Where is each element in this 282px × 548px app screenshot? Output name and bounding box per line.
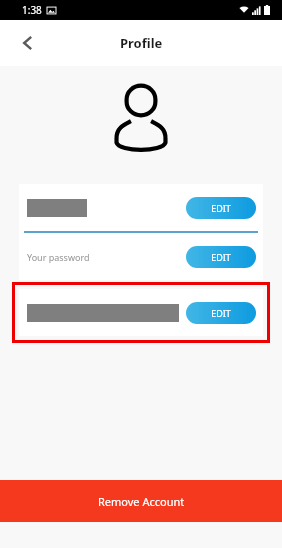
staticText: EDIT xyxy=(211,251,231,263)
staticText: 1:38 xyxy=(22,3,42,17)
button[interactable]: EDIT xyxy=(186,246,256,268)
button[interactable]: EDIT xyxy=(19,184,263,231)
staticText: EDIT xyxy=(211,202,231,214)
staticText: Profile xyxy=(120,34,163,52)
button[interactable]: EDIT xyxy=(186,197,256,219)
staticText: Your password xyxy=(27,251,90,263)
button[interactable]: Back xyxy=(12,27,44,59)
staticText: Remove Account xyxy=(98,494,185,509)
button[interactable]: Your password xyxy=(19,233,263,280)
staticText: EDIT xyxy=(211,307,231,319)
button[interactable]: EDIT xyxy=(19,289,263,336)
button[interactable]: EDIT xyxy=(186,302,256,324)
button[interactable]: Remove Account xyxy=(0,480,282,522)
